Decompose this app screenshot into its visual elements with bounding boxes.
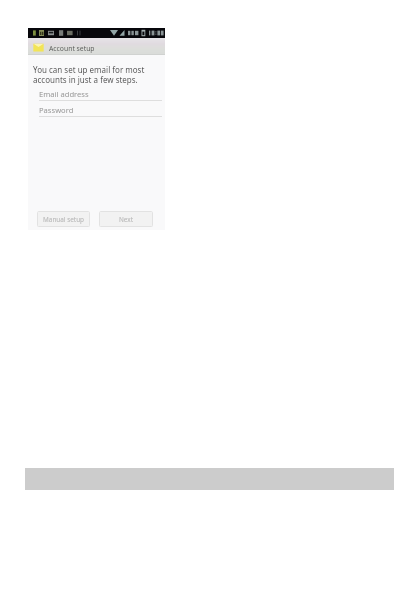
staticText: You can set up email for most accounts i… [33,64,145,86]
staticText: Next [119,215,134,224]
button[interactable]: Manual setup [37,211,90,227]
button[interactable]: Email address [39,89,162,101]
other: Email app icon [33,41,44,54]
button[interactable]: Next [99,211,153,227]
button[interactable]: Email app icon [33,38,165,55]
staticText: Manual setup [43,215,85,224]
staticText: Email address [39,89,89,99]
other: Status bar [28,28,165,38]
staticText: Password [39,105,74,115]
button[interactable]: Password [39,105,162,117]
staticText: Account setup [49,44,95,53]
